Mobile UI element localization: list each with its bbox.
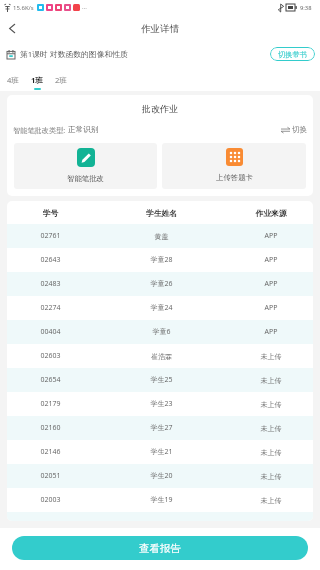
staticText: 学生25	[94, 375, 229, 385]
staticText: 正常识别	[68, 125, 99, 135]
staticText: 智能笔批改类型:	[13, 125, 68, 135]
staticText: 学童28	[94, 255, 229, 265]
staticText: 切换	[292, 125, 308, 135]
staticText: 02051	[7, 471, 94, 481]
staticText: APP	[229, 255, 313, 265]
staticText: APP	[229, 327, 313, 337]
staticText: 02761	[7, 231, 94, 241]
button[interactable]: 02761	[7, 224, 313, 248]
staticText: 未上传	[229, 400, 313, 409]
button[interactable]: 02274	[7, 296, 313, 320]
button[interactable]: 切换带书	[270, 47, 315, 61]
staticText: 作业来源	[229, 208, 313, 218]
staticText: 未上传	[229, 496, 313, 505]
staticText: 智能笔批改	[67, 174, 104, 183]
button[interactable]: 智能笔批改	[14, 143, 157, 189]
button[interactable]: 切换	[281, 125, 308, 135]
button[interactable]: 02603	[7, 344, 313, 368]
staticText: 上传答题卡	[216, 173, 253, 182]
staticText: 1班	[31, 75, 43, 85]
staticText: 未上传	[229, 472, 313, 481]
staticText: 学号	[7, 208, 94, 218]
staticText: 02654	[7, 375, 94, 385]
staticText: 学生21	[94, 447, 229, 457]
button[interactable]: 4班	[1, 66, 25, 91]
staticText: 黄盖	[94, 232, 229, 241]
staticText: APP	[229, 279, 313, 289]
staticText: 9:38	[300, 4, 312, 12]
staticText: 学童6	[94, 327, 229, 337]
staticText: 未上传	[229, 352, 313, 361]
staticText: 学生姓名	[94, 208, 229, 218]
staticText: 查看报告	[139, 542, 181, 555]
staticText: 02603	[7, 351, 94, 361]
button[interactable]: 1班	[25, 66, 49, 91]
button[interactable]: 02654	[7, 368, 313, 392]
staticText: 02274	[7, 303, 94, 313]
staticText: 未上传	[229, 424, 313, 433]
staticText: 02146	[7, 447, 94, 457]
button[interactable]: 上传答题卡	[162, 143, 306, 189]
staticText: APP	[229, 231, 313, 241]
staticText: 02483	[7, 279, 94, 289]
button[interactable]: 02051	[7, 464, 313, 488]
staticText: 02003	[7, 495, 94, 505]
staticText: APP	[229, 303, 313, 313]
staticText: 未上传	[229, 448, 313, 457]
button[interactable]: 02643	[7, 248, 313, 272]
button[interactable]: 02146	[7, 440, 313, 464]
staticText: 切换带书	[278, 50, 307, 59]
staticText: 学童24	[94, 303, 229, 313]
button[interactable]: 02160	[7, 416, 313, 440]
button[interactable]: 02483	[7, 272, 313, 296]
button[interactable]: 返回	[0, 15, 24, 42]
staticText: ···	[82, 4, 87, 12]
staticText: 2班	[55, 75, 67, 85]
staticText: 未上传	[229, 376, 313, 385]
staticText: 学生19	[94, 495, 229, 505]
staticText: 02160	[7, 423, 94, 433]
staticText: 学生27	[94, 423, 229, 433]
staticText: 学童26	[94, 279, 229, 289]
button[interactable]: 02179	[7, 392, 313, 416]
staticText: 02179	[7, 399, 94, 409]
staticText: 15.6K/s	[13, 4, 34, 12]
button[interactable]: 02003	[7, 488, 313, 512]
staticText: 学生20	[94, 471, 229, 481]
button[interactable]: 查看报告	[12, 536, 308, 560]
staticText: 第1课时 对数函数的图像和性质	[20, 49, 128, 60]
staticText: 4班	[7, 75, 19, 85]
staticText: 崔浩霖	[94, 352, 229, 361]
staticText: 02643	[7, 255, 94, 265]
button[interactable]: 2班	[49, 66, 73, 91]
staticText: 作业详情	[141, 23, 180, 35]
staticText: 学生23	[94, 399, 229, 409]
button[interactable]: 00404	[7, 320, 313, 344]
staticText: 批改作业	[7, 103, 313, 114]
staticText: 00404	[7, 327, 94, 337]
